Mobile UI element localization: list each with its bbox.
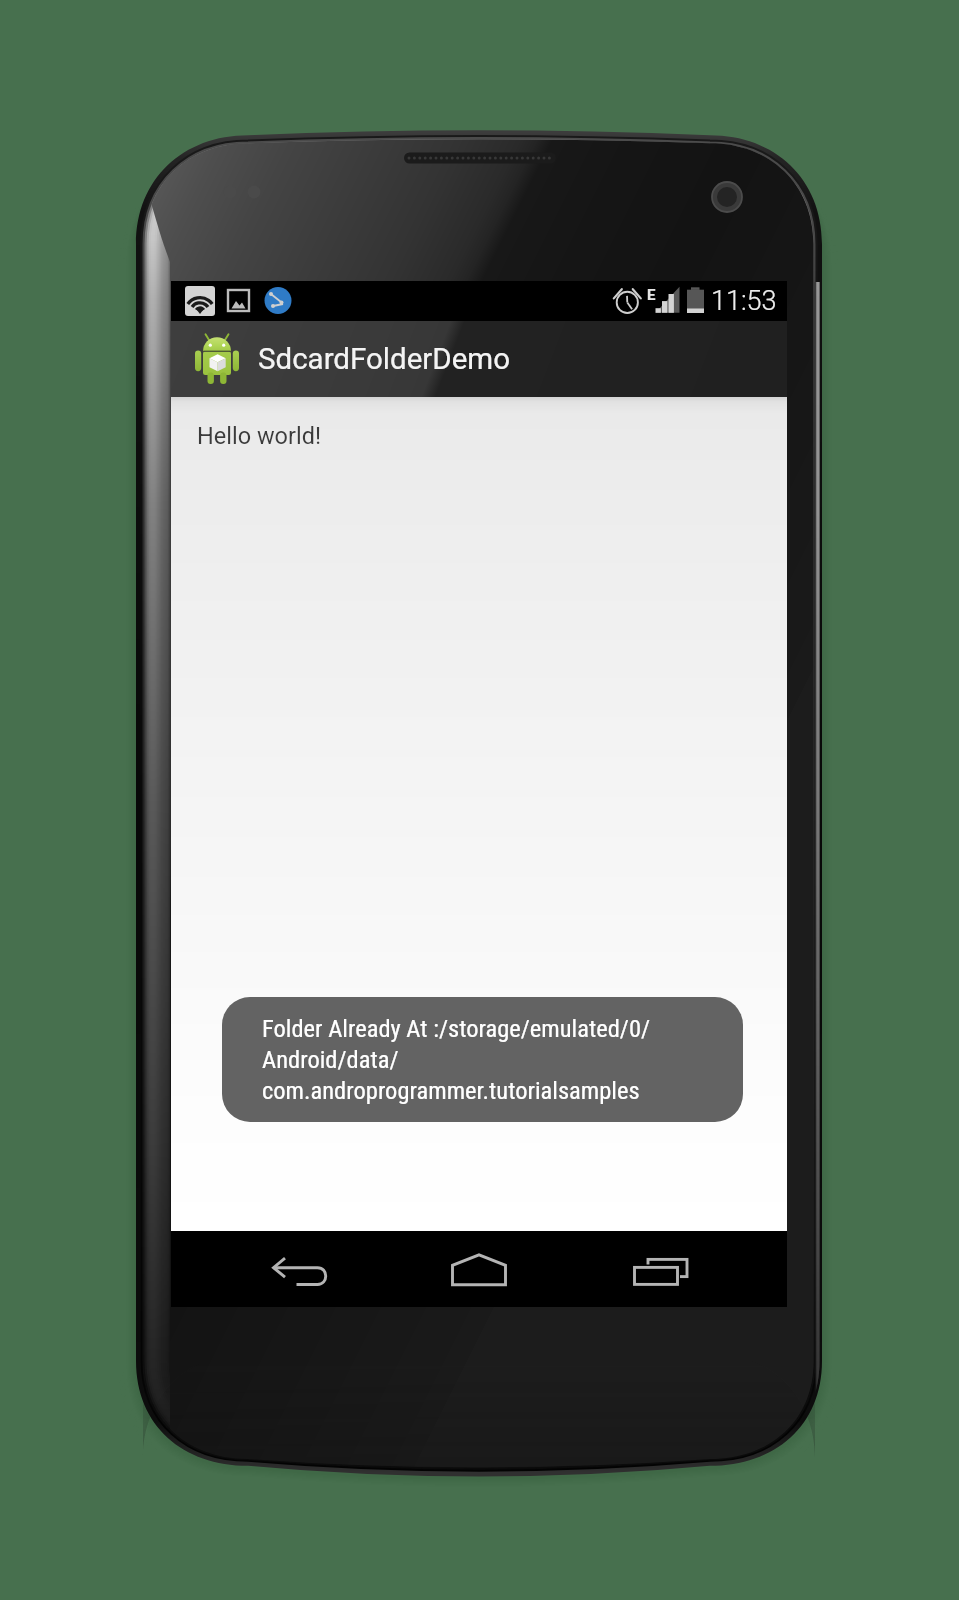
button[interactable]: Back (171, 1231, 377, 1307)
button[interactable]: SdcardFolderDemo (171, 321, 787, 397)
staticText: E (647, 286, 656, 304)
staticText: Folder Already At :/storage/emulated/0/A… (262, 1014, 725, 1105)
button[interactable]: Home (377, 1231, 582, 1307)
staticText: Hello world! (197, 422, 321, 450)
button[interactable]: Recent apps (582, 1231, 787, 1307)
button[interactable]: Folder Already At :/storage/emulated/0/A… (222, 997, 743, 1122)
staticText: 11:53 (711, 285, 777, 317)
staticText: SdcardFolderDemo (258, 342, 510, 377)
